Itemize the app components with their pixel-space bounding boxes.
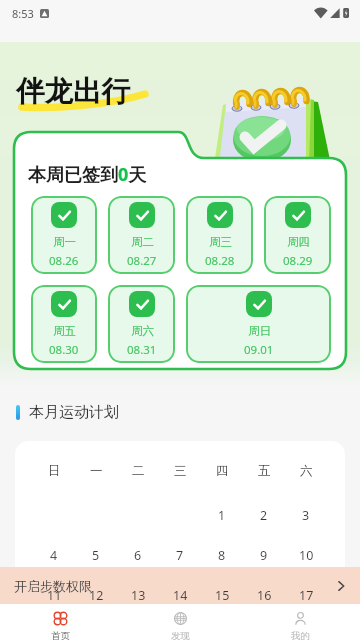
staticText: 本月运动计划 xyxy=(29,403,119,422)
staticText: 08.26 xyxy=(49,253,79,269)
staticText: 15 xyxy=(215,587,230,604)
staticText: 4 xyxy=(50,547,58,564)
staticText: 六 xyxy=(300,463,313,479)
button[interactable]: 我的 xyxy=(240,604,360,640)
staticText: 开启步数权限 xyxy=(14,578,92,594)
staticText: 13 xyxy=(131,587,146,604)
other: More xyxy=(335,580,347,592)
staticText: 3 xyxy=(302,507,310,524)
staticText: 1 xyxy=(218,507,226,524)
staticText: 二 xyxy=(132,463,145,479)
staticText: 08.29 xyxy=(283,253,313,269)
button[interactable]: 开启步数权限 xyxy=(0,567,360,604)
staticText: 周五 xyxy=(53,324,76,338)
staticText: 四 xyxy=(216,463,229,479)
button[interactable]: 周三 xyxy=(186,196,253,274)
staticText: 8:53 xyxy=(12,6,34,21)
staticText: 周四 xyxy=(287,235,310,249)
staticText: 09.01 xyxy=(244,342,274,358)
button[interactable]: 周五 xyxy=(31,285,97,363)
staticText: 日 xyxy=(48,463,61,479)
staticText: 发现 xyxy=(171,630,190,640)
staticText: 16 xyxy=(257,587,272,604)
staticText: 12 xyxy=(89,587,104,604)
staticText: 周日 xyxy=(248,324,271,338)
staticText: 5 xyxy=(92,547,100,564)
staticText: 周六 xyxy=(131,324,154,338)
button[interactable]: 首页 xyxy=(0,604,120,640)
staticText: 本周已签到0天 xyxy=(28,162,147,187)
staticText: 2 xyxy=(260,507,268,524)
staticText: 我的 xyxy=(291,630,310,640)
staticText: 周一 xyxy=(53,235,76,249)
staticText: 首页 xyxy=(51,630,70,640)
staticText: 五 xyxy=(258,463,271,479)
staticText: 08.30 xyxy=(49,342,79,358)
button[interactable]: 周四 xyxy=(264,196,331,274)
staticText: 17 xyxy=(299,587,314,604)
staticText: 7 xyxy=(176,547,184,564)
staticText: 08.28 xyxy=(205,253,235,269)
button[interactable]: 周六 xyxy=(108,285,175,363)
staticText: 周三 xyxy=(209,235,232,249)
staticText: 14 xyxy=(173,587,188,604)
staticText: 一 xyxy=(90,463,103,479)
staticText: 11 xyxy=(47,587,62,604)
staticText: 三 xyxy=(174,463,187,479)
staticText: 8 xyxy=(218,547,226,564)
staticText: 周二 xyxy=(131,235,154,249)
staticText: 6 xyxy=(134,547,142,564)
staticText: 10 xyxy=(299,547,314,564)
button[interactable]: 周二 xyxy=(108,196,175,274)
staticText: 9 xyxy=(260,547,268,564)
staticText: 伴龙出行 xyxy=(16,74,130,110)
button[interactable]: 周日 xyxy=(186,285,331,363)
button[interactable]: 周一 xyxy=(31,196,97,274)
button[interactable]: 发现 xyxy=(120,604,240,640)
staticText: 08.31 xyxy=(127,342,157,358)
staticText: 08.27 xyxy=(127,253,157,269)
